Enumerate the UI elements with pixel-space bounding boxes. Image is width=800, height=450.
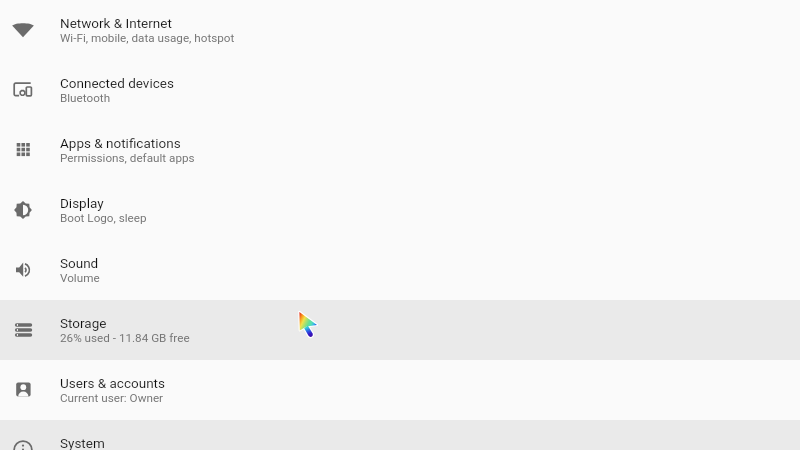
button[interactable]: Storage	[0, 300, 800, 360]
staticText: Wi-Fi, mobile, data usage, hotspot	[60, 31, 235, 45]
staticText: Connected devices	[60, 75, 174, 91]
other: Pointer	[298, 311, 318, 338]
staticText: Sound	[60, 255, 99, 271]
staticText: Current user: Owner	[60, 391, 164, 405]
button[interactable]: System	[0, 420, 800, 450]
staticText: Permissions, default apps	[60, 151, 195, 165]
staticText: 26% used - 11.84 GB free	[60, 331, 190, 345]
button[interactable]: Connected devices	[0, 60, 800, 120]
staticText: Network & Internet	[60, 15, 172, 31]
staticText: Display	[60, 195, 104, 211]
staticText: Apps & notifications	[60, 135, 181, 151]
staticText: Boot Logo, sleep	[60, 211, 147, 225]
button[interactable]: Sound	[0, 240, 800, 300]
staticText: System	[60, 435, 105, 450]
staticText: Users & accounts	[60, 375, 165, 391]
button[interactable]: Network & Internet	[0, 0, 800, 60]
button[interactable]: Users & accounts	[0, 360, 800, 420]
staticText: Storage	[60, 315, 107, 331]
staticText: Volume	[60, 271, 100, 285]
staticText: Bluetooth	[60, 91, 111, 105]
button[interactable]: Apps & notifications	[0, 120, 800, 180]
button[interactable]: Display	[0, 180, 800, 240]
